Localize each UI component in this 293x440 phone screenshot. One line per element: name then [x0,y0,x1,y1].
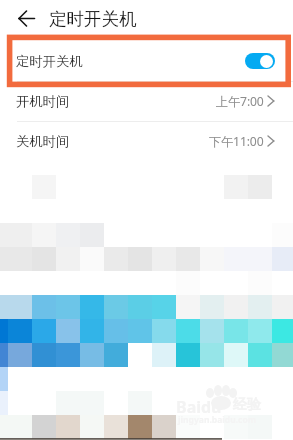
staticText: 开机时间 [16,93,70,110]
button[interactable]: 开机时间 [0,81,293,121]
staticText: jingyan.baidu.com [178,414,257,426]
staticText: 经验 [233,396,261,414]
staticText: 定时开关机 [16,53,83,70]
staticText: 上午7:00 [216,93,264,110]
button[interactable]: 关机时间 [0,121,293,161]
staticText: 关机时间 [16,133,70,150]
button[interactable]: Back [5,4,34,33]
staticText: 定时开关机 [49,8,137,30]
button[interactable]: 定时开关机 [0,41,293,81]
staticText: 下午11:00 [209,133,264,150]
staticText: Baidu [176,396,222,418]
